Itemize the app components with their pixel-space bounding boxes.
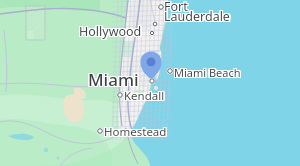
- button[interactable]: Map of Miami area: [0, 0, 300, 166]
